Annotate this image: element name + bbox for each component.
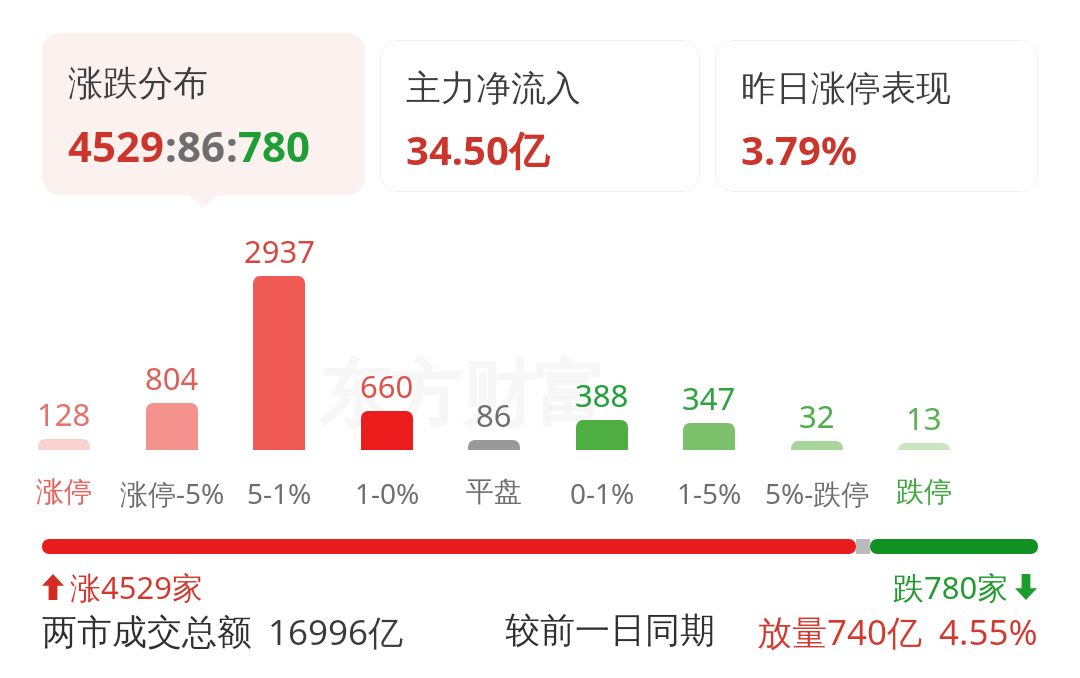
staticText: 两市成交总额 — [42, 610, 252, 654]
staticText: 660 — [360, 365, 414, 407]
staticText: 86 — [177, 117, 226, 174]
staticText: 涨跌分布 — [68, 61, 208, 105]
staticText: 涨4529家 — [70, 566, 203, 608]
staticText: 2937 — [244, 230, 315, 272]
staticText: 804 — [145, 357, 199, 399]
other: Declining stocks — [1015, 574, 1037, 600]
button[interactable]: 主力净流入 — [380, 40, 700, 192]
staticText: 16996亿 — [268, 608, 404, 656]
staticText: 388 — [575, 374, 629, 416]
staticText: 5-1% — [247, 474, 312, 512]
staticText: 1-0% — [355, 474, 420, 512]
staticText: : — [226, 117, 238, 174]
staticText: 0-1% — [570, 474, 635, 512]
staticText: 1-5% — [677, 474, 742, 512]
staticText: 跌780家 — [893, 566, 1009, 608]
other: Advancing stocks — [42, 574, 64, 600]
staticText: 跌停 — [896, 474, 952, 509]
staticText: 34.50亿 — [406, 122, 549, 177]
staticText: 东方财富 — [318, 350, 606, 441]
staticText: : — [165, 117, 177, 174]
staticText: 较前一日同期 — [505, 608, 715, 652]
staticText: 5%-跌停 — [765, 474, 870, 512]
button[interactable]: 昨日涨停表现 — [715, 40, 1038, 192]
staticText: 13 — [906, 397, 942, 439]
staticText: 347 — [682, 377, 736, 419]
staticText: 4529 — [68, 117, 165, 174]
staticText: 涨停 — [36, 474, 92, 509]
staticText: 86 — [476, 394, 512, 436]
staticText: 主力净流入 — [406, 66, 581, 110]
staticText: 32 — [799, 395, 835, 437]
staticText: 昨日涨停表现 — [741, 66, 951, 110]
staticText: 128 — [37, 393, 91, 435]
staticText: 4.55% — [939, 608, 1038, 656]
staticText: 780 — [238, 117, 311, 174]
staticText: 涨停-5% — [120, 474, 225, 512]
button[interactable]: 涨跌分布 — [42, 33, 365, 195]
staticText: 3.79% — [741, 122, 857, 176]
staticText: 放量740亿 — [757, 608, 923, 656]
staticText: 平盘 — [466, 474, 522, 509]
